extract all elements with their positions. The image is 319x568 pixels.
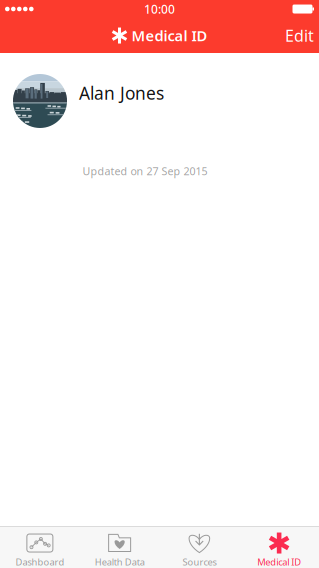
staticText: Health Data <box>95 556 145 568</box>
button[interactable]: Sources <box>159 526 239 566</box>
staticText: Dashboard <box>15 556 64 568</box>
button[interactable]: Edit <box>275 19 319 52</box>
staticText: Updated on 27 Sep 2015 <box>82 164 207 178</box>
button[interactable]: Medical ID <box>239 526 319 566</box>
button[interactable]: Health Data <box>80 526 160 566</box>
staticText: Edit <box>285 25 314 46</box>
staticText: Medical ID <box>257 556 301 568</box>
staticText: 10:00 <box>144 1 175 17</box>
staticText: Alan Jones <box>79 81 164 104</box>
staticText: Medical ID <box>131 26 207 45</box>
button[interactable]: Dashboard <box>0 526 80 566</box>
staticText: Sources <box>182 556 216 568</box>
